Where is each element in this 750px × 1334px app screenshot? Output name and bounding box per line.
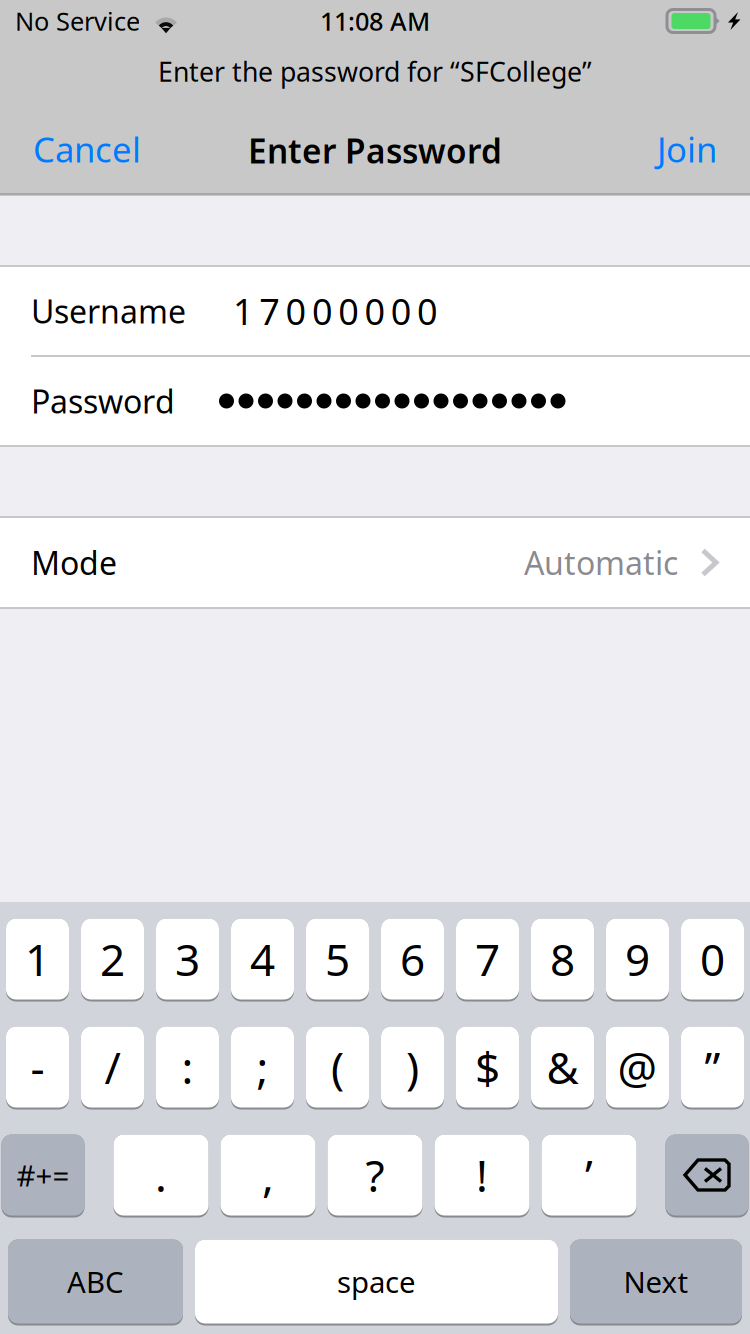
staticText: 6 — [400, 930, 425, 988]
button[interactable]: - — [6, 1026, 69, 1109]
button[interactable]: $ — [456, 1026, 519, 1109]
button[interactable]: ( — [306, 1026, 369, 1109]
staticText: Username — [31, 290, 186, 332]
button[interactable]: 1 — [6, 918, 69, 1001]
staticText: - — [30, 1038, 44, 1096]
staticText: & — [546, 1038, 578, 1096]
button[interactable]: / — [81, 1026, 144, 1109]
button[interactable]: 8 — [531, 918, 594, 1001]
staticText: ( — [331, 1038, 344, 1096]
staticText: ; — [256, 1038, 268, 1096]
staticText: Automatic — [524, 541, 678, 584]
button[interactable]: space — [195, 1239, 558, 1325]
button[interactable]: 9 — [606, 918, 669, 1001]
button[interactable]: ABC — [8, 1239, 183, 1325]
button[interactable]: Next — [570, 1239, 742, 1325]
button[interactable]: 4 — [231, 918, 294, 1001]
staticText: Enter Password — [248, 128, 502, 173]
staticText: 8 — [550, 930, 575, 988]
staticText: 17000000 — [233, 287, 438, 335]
staticText: #+= — [16, 1155, 69, 1194]
button[interactable]: ) — [381, 1026, 444, 1109]
staticText: 4 — [250, 930, 275, 988]
staticText: 2 — [100, 930, 125, 988]
button[interactable]: #+= — [1, 1134, 84, 1217]
button[interactable]: ” — [681, 1026, 744, 1109]
button[interactable]: ’ — [541, 1134, 636, 1217]
button[interactable]: , — [220, 1134, 315, 1217]
staticText: / — [104, 1038, 120, 1096]
staticText: Cancel — [33, 126, 141, 172]
staticText: space — [337, 1262, 416, 1301]
button[interactable]: . — [113, 1134, 208, 1217]
staticText: ” — [704, 1038, 720, 1096]
button[interactable]: : — [156, 1026, 219, 1109]
staticText: Next — [623, 1262, 688, 1301]
button[interactable]: 6 — [381, 918, 444, 1001]
staticText: ? — [365, 1146, 384, 1204]
button[interactable]: & — [531, 1026, 594, 1109]
staticText: 9 — [625, 930, 650, 988]
staticText: 11:08 AM — [320, 4, 430, 38]
button[interactable]: 3 — [156, 918, 219, 1001]
staticText: . — [155, 1146, 167, 1204]
staticText: ABC — [67, 1262, 124, 1301]
staticText: , — [262, 1146, 274, 1204]
button[interactable]: Delete — [665, 1134, 748, 1217]
button[interactable]: Cancel — [0, 102, 165, 193]
staticText: : — [181, 1038, 193, 1096]
staticText: 0 — [700, 930, 725, 988]
staticText: 3 — [175, 930, 200, 988]
button[interactable]: 0 — [681, 918, 744, 1001]
staticText: Join — [657, 126, 717, 172]
button[interactable]: 2 — [81, 918, 144, 1001]
staticText: ) — [406, 1038, 419, 1096]
button[interactable]: 5 — [306, 918, 369, 1001]
staticText: ! — [476, 1146, 488, 1204]
staticText: Mode — [31, 541, 117, 584]
button[interactable]: 7 — [456, 918, 519, 1001]
staticText: $ — [475, 1038, 500, 1096]
staticText: @ — [617, 1038, 657, 1096]
button[interactable]: ! — [434, 1134, 529, 1217]
staticText: Enter the password for “SFCollege” — [158, 54, 592, 89]
staticText: 1 — [25, 930, 50, 988]
button[interactable]: ? — [327, 1134, 422, 1217]
staticText: Password — [31, 380, 175, 422]
button[interactable]: Join — [633, 102, 750, 193]
button[interactable]: Mode — [0, 518, 750, 607]
staticText: 5 — [325, 930, 350, 988]
button[interactable]: @ — [606, 1026, 669, 1109]
button[interactable]: ; — [231, 1026, 294, 1109]
staticText: ’ — [585, 1146, 593, 1204]
staticText: 7 — [475, 930, 500, 988]
staticText: No Service — [15, 4, 140, 38]
